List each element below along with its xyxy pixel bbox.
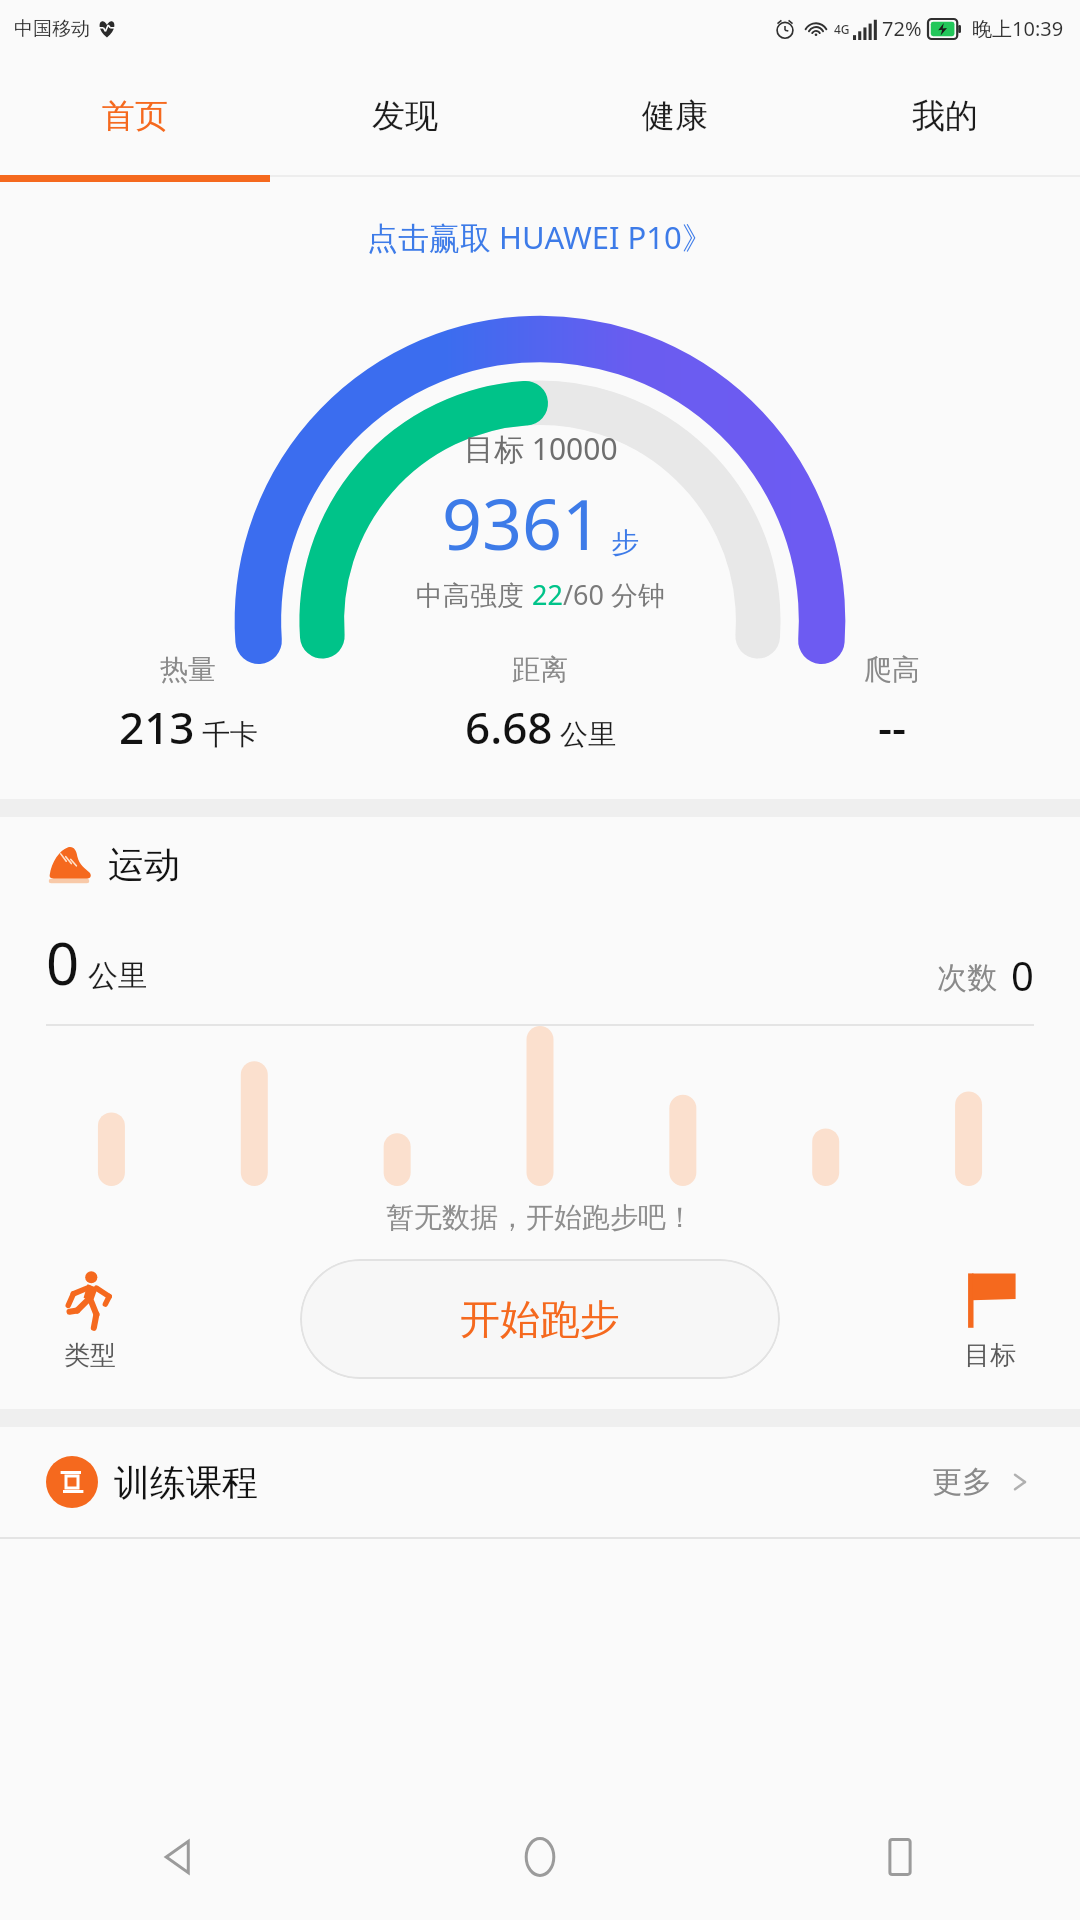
staticText: 213 (119, 697, 195, 757)
staticText: 类型 (64, 1339, 116, 1372)
staticText: 4G (834, 21, 850, 37)
staticText: 点击赢取 HUAWEI P10》 (367, 216, 713, 258)
staticText: 千卡 (202, 717, 258, 752)
button[interactable]: 运动 (0, 841, 1080, 887)
staticText: 热量 (160, 652, 216, 687)
button[interactable]: 爬高 (716, 652, 1068, 757)
button[interactable]: Back (0, 1794, 360, 1920)
staticText: 距离 (512, 652, 568, 687)
staticText: 中国移动 (14, 17, 90, 41)
staticText: 晚上10:39 (972, 15, 1064, 42)
staticText: 6.68 (465, 697, 553, 757)
staticText: 开始跑步 (460, 1294, 620, 1344)
staticText: 首页 (102, 95, 168, 137)
staticText: 目标 (964, 1339, 1016, 1372)
staticText: 运动 (108, 842, 180, 887)
staticText: 训练课程 (114, 1460, 258, 1505)
button[interactable]: Recents (720, 1794, 1080, 1920)
button[interactable]: 健康 (540, 57, 810, 175)
button[interactable]: Home (360, 1794, 720, 1920)
staticText: 我的 (912, 95, 978, 137)
button[interactable]: 距离 (364, 652, 716, 757)
staticText: 健康 (642, 95, 708, 137)
button[interactable]: 类型 (30, 1267, 150, 1372)
button[interactable]: 首页 (0, 57, 270, 175)
staticText: 中高强度 (416, 576, 532, 613)
staticText: 爬高 (864, 652, 920, 687)
staticText: 次数 (937, 959, 997, 997)
other: 目标 (958, 1267, 1022, 1331)
staticText: 0 (46, 923, 80, 1002)
button[interactable]: 目标 (930, 1267, 1050, 1372)
button[interactable]: 开始跑步 (300, 1259, 780, 1379)
button[interactable]: 训练课程 (0, 1427, 1080, 1537)
button[interactable]: 我的 (810, 57, 1080, 175)
button[interactable]: 点击赢取 HUAWEI P10》 (0, 216, 1080, 258)
staticText: /60 分钟 (563, 576, 665, 613)
staticText: 更多 (932, 1463, 992, 1501)
other: 运动 (46, 841, 92, 887)
button[interactable]: 发现 (270, 57, 540, 175)
staticText: 暂无数据，开始跑步吧！ (386, 1200, 694, 1235)
other: 类型 (58, 1267, 122, 1331)
staticText: 公里 (88, 957, 148, 995)
staticText: 发现 (372, 95, 438, 137)
staticText: -- (878, 697, 907, 757)
staticText: 22 (532, 576, 563, 613)
staticText: 目标 10000 (464, 428, 618, 469)
staticText: 0 (1011, 948, 1034, 1002)
button[interactable]: 热量 (12, 652, 364, 757)
staticText: 9361 (442, 475, 603, 570)
staticText: 公里 (560, 717, 616, 752)
staticText: 72% (882, 15, 922, 42)
staticText: 步 (611, 525, 639, 560)
